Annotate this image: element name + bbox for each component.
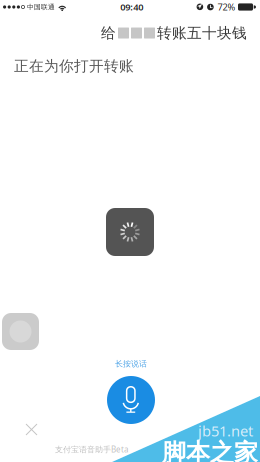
staticText: 正在为你打开转账 bbox=[14, 57, 134, 75]
staticText: 09:40 bbox=[120, 1, 143, 13]
staticText: 中国联通 bbox=[27, 3, 55, 11]
staticText: 支付宝语音助手Beta bbox=[55, 444, 128, 455]
staticText: 给 bbox=[101, 24, 116, 42]
button[interactable]: Close bbox=[25, 423, 38, 436]
staticText: jb51.net bbox=[198, 421, 253, 440]
staticText: 长按说话 bbox=[115, 359, 147, 369]
staticText: 脚本之家 bbox=[162, 438, 258, 462]
button[interactable]: Hold to talk bbox=[107, 376, 155, 424]
staticText: 72% bbox=[217, 1, 235, 13]
staticText: 转账五十块钱 bbox=[157, 24, 247, 42]
